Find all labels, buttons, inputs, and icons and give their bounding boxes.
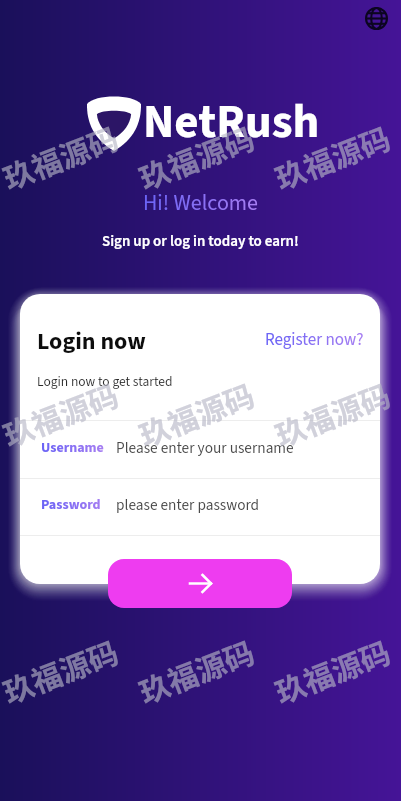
staticText: NetRush	[143, 89, 320, 156]
button[interactable]: Language	[358, 0, 394, 36]
staticText: Register now?	[265, 328, 364, 352]
staticText: Login now	[37, 324, 146, 358]
staticText: Sign up or log in today to earn!	[102, 231, 299, 252]
staticText: Please enter your username	[116, 437, 294, 459]
staticText: Password	[41, 495, 101, 515]
staticText: Login now to get started	[37, 372, 173, 391]
button[interactable]: Register now?	[265, 328, 364, 352]
staticText: Username	[41, 438, 104, 458]
staticText: please enter password	[116, 494, 260, 516]
button[interactable]: Username	[20, 421, 380, 478]
staticText: Hi! Welcome	[143, 187, 258, 218]
button[interactable]: Password	[20, 479, 380, 535]
button[interactable]: Submit	[108, 559, 292, 608]
